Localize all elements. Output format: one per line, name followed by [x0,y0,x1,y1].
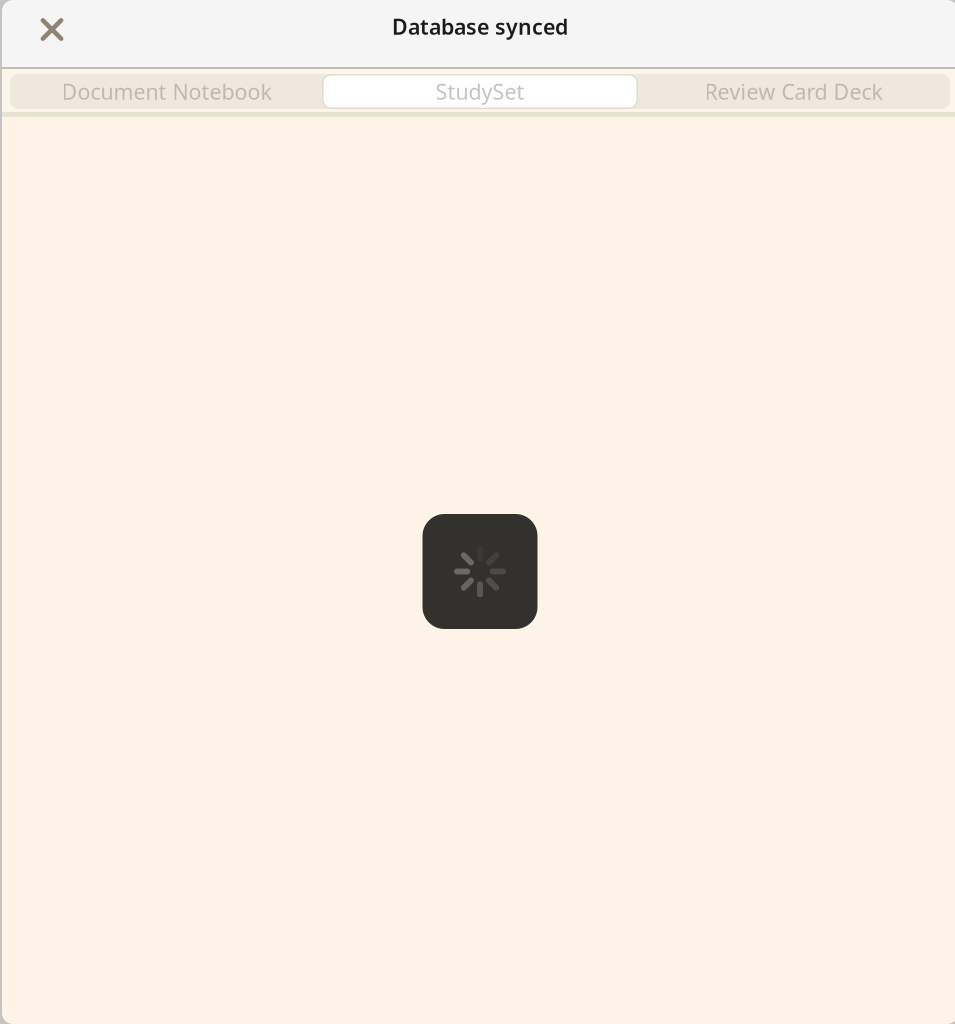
staticText: Database synced [392,12,568,41]
button[interactable]: Document Notebook [10,74,323,109]
button[interactable]: Review Card Deck [637,74,950,109]
button[interactable]: Close [30,7,74,51]
staticText: Review Card Deck [704,77,882,106]
staticText: Document Notebook [61,77,271,106]
button[interactable]: StudySet [323,74,637,109]
staticText: StudySet [435,77,524,106]
